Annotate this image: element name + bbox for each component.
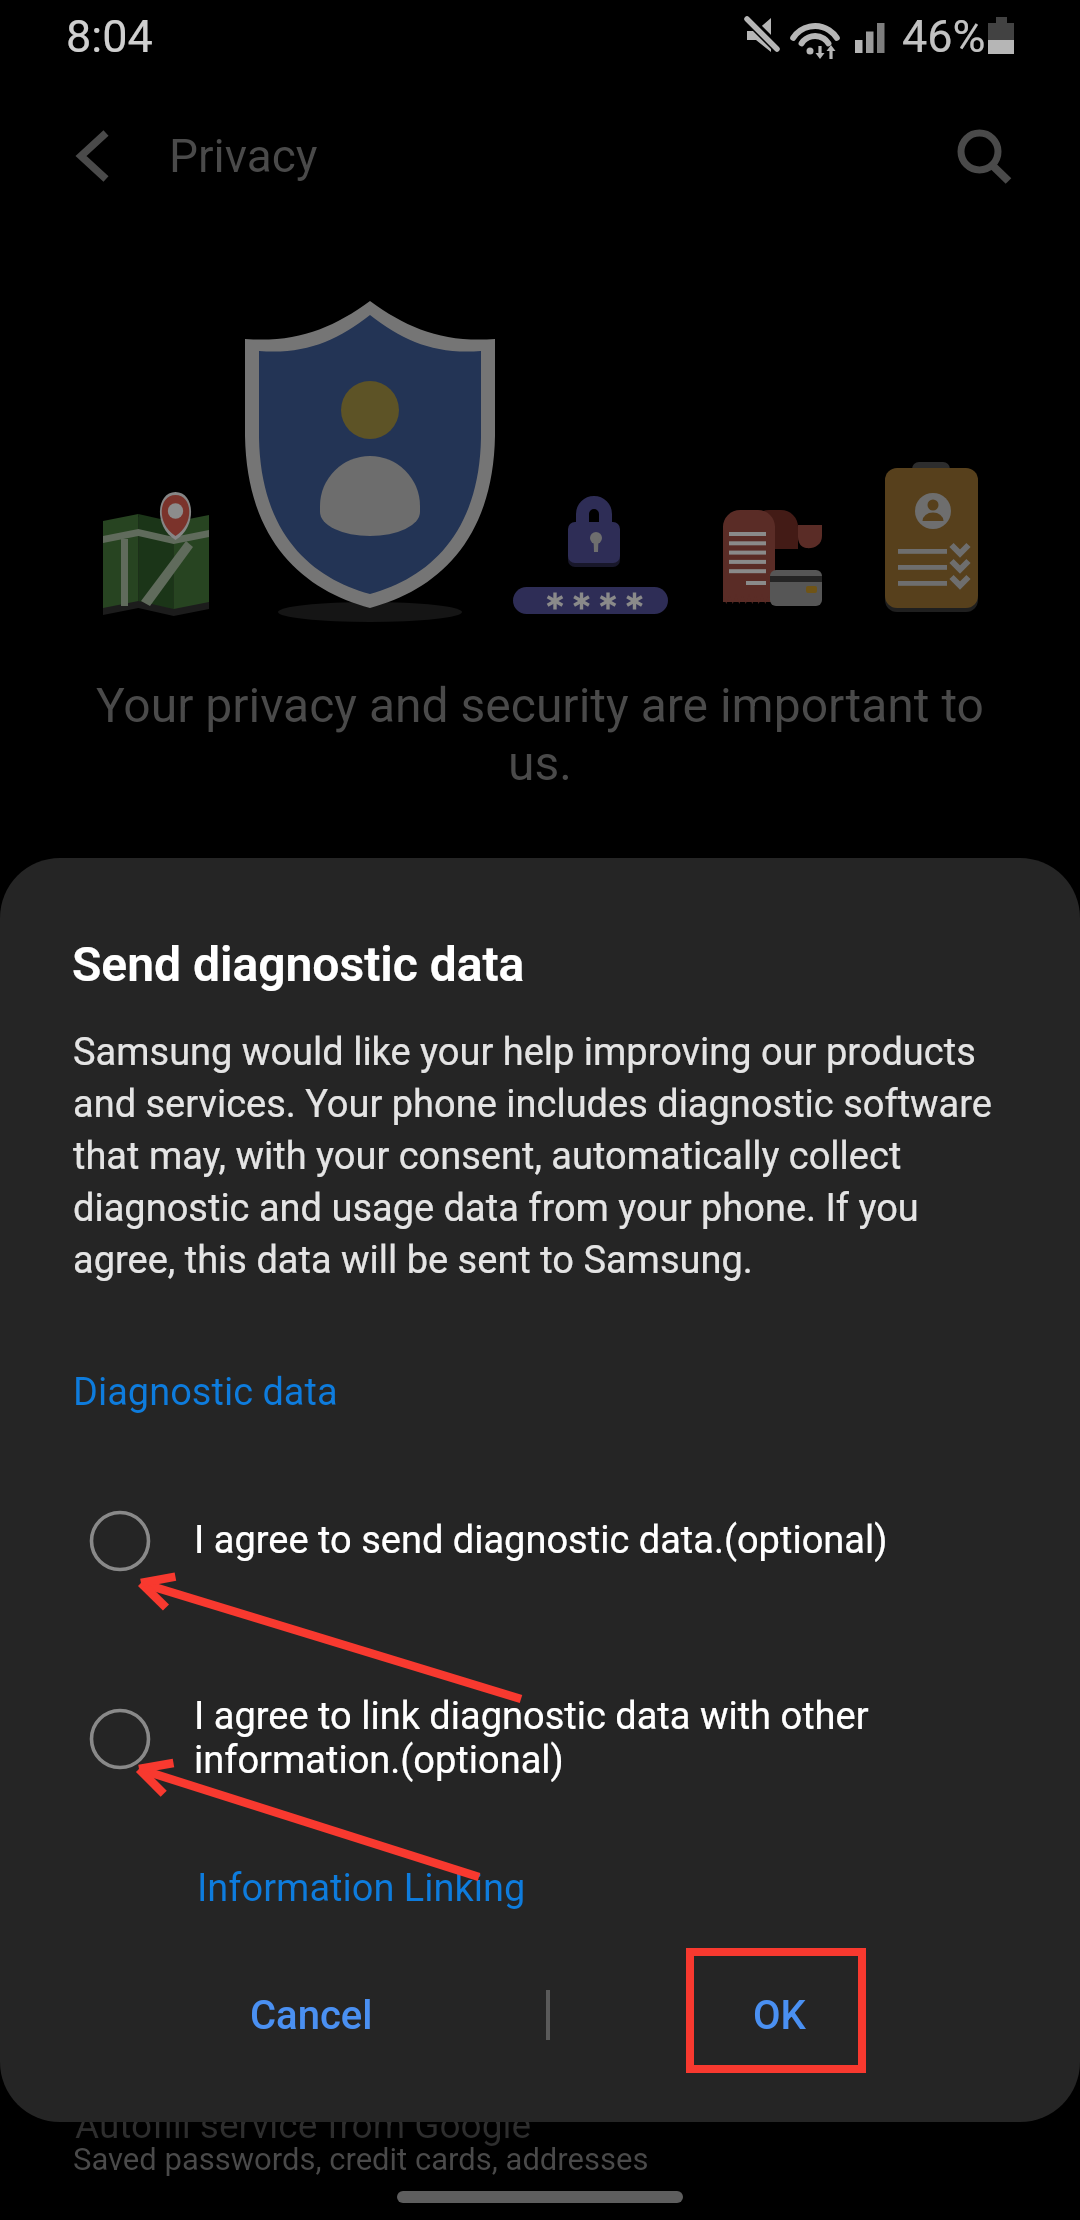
staticText: Cancel bbox=[250, 1992, 373, 2039]
button[interactable]: OK bbox=[588, 1960, 970, 2070]
button[interactable]: Cancel bbox=[120, 1960, 502, 2070]
button[interactable]: I agree to link diagnostic data with oth… bbox=[0, 1691, 1080, 1787]
button[interactable]: Back bbox=[44, 100, 154, 210]
staticText: Samsung would like your help improving o… bbox=[73, 1030, 1003, 1282]
staticText: Saved passwords, credit cards, addresses bbox=[73, 2141, 649, 2177]
staticText: Diagnostic data bbox=[73, 1370, 338, 1415]
button[interactable]: Search bbox=[930, 97, 1040, 207]
staticText: Send diagnostic data bbox=[72, 936, 525, 992]
staticText: 8:04 bbox=[66, 10, 153, 63]
staticText: Information Linking bbox=[197, 1866, 526, 1911]
button[interactable]: I agree to send diagnostic data.(optiona… bbox=[0, 1493, 1080, 1589]
staticText: 46% bbox=[902, 10, 986, 63]
staticText: Privacy bbox=[169, 129, 318, 183]
staticText: I agree to link diagnostic data with oth… bbox=[194, 1694, 884, 1782]
staticText: Autofill service from Google bbox=[75, 2104, 532, 2147]
staticText: OK bbox=[753, 1992, 806, 2039]
button[interactable]: Information Linking bbox=[197, 1866, 526, 1911]
staticText: Your privacy and security are important … bbox=[90, 677, 990, 792]
staticText: I agree to send diagnostic data.(optiona… bbox=[194, 1518, 894, 1563]
button[interactable]: Diagnostic data bbox=[73, 1370, 338, 1415]
